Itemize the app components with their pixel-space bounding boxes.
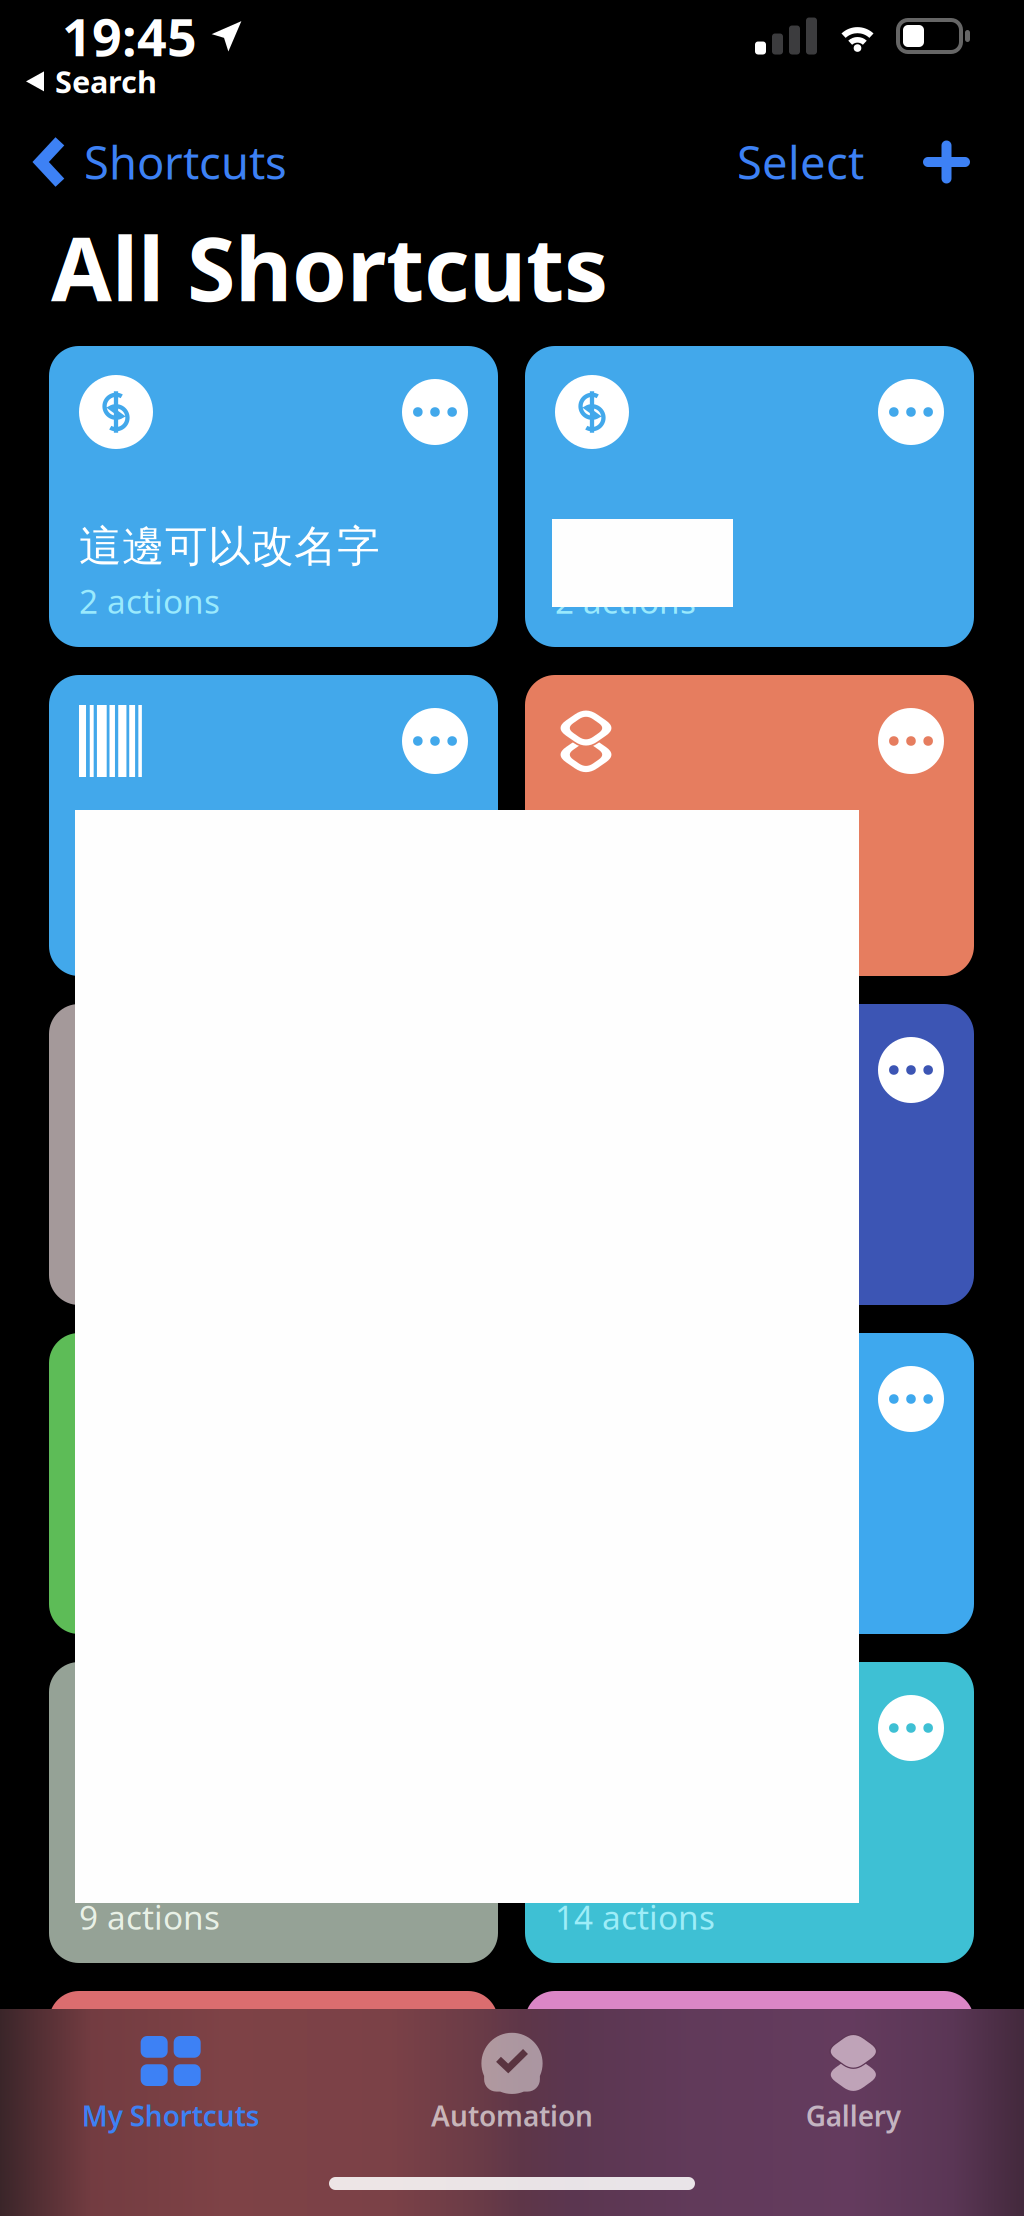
- button[interactable]: 這邊可以改名字: [49, 346, 498, 647]
- staticText: My Shortcuts: [82, 2097, 260, 2134]
- staticText: 2 actions: [555, 579, 696, 623]
- button[interactable]: Select: [737, 118, 864, 206]
- button[interactable]: Stack: [525, 675, 974, 976]
- staticText: 19:45: [62, 1, 197, 71]
- button[interactable]: Scan: [49, 675, 498, 976]
- button[interactable]: My Shortcuts: [0, 2028, 341, 2128]
- staticText: Budget: [555, 514, 712, 573]
- staticText: Select: [737, 132, 864, 192]
- button[interactable]: [49, 1991, 498, 2216]
- staticText: 2 actions: [79, 579, 220, 623]
- button[interactable]: Budget: [525, 346, 974, 647]
- staticText: Automation: [431, 2097, 593, 2134]
- button[interactable]: Music: [525, 1004, 974, 1305]
- button[interactable]: Gallery: [683, 2028, 1024, 2128]
- button[interactable]: Travel: [525, 1662, 974, 1963]
- staticText: 14 actions: [555, 1895, 715, 1939]
- staticText: All Shortcuts: [51, 209, 608, 325]
- button[interactable]: Health: [49, 1333, 498, 1634]
- button[interactable]: Automation: [341, 2028, 683, 2128]
- button[interactable]: Routine: [49, 1662, 498, 1963]
- button[interactable]: Shortcuts: [0, 118, 287, 206]
- staticText: 這邊可以改名字: [79, 520, 380, 573]
- staticText: Gallery: [806, 2097, 901, 2134]
- staticText: Shortcuts: [84, 132, 287, 192]
- button[interactable]: [525, 1991, 974, 2216]
- button[interactable]: New Shortcut: [864, 140, 1024, 183]
- button[interactable]: Weather: [525, 1333, 974, 1634]
- button[interactable]: Notes: [49, 1004, 498, 1305]
- staticText: Search: [55, 61, 157, 102]
- staticText: 9 actions: [79, 1895, 220, 1939]
